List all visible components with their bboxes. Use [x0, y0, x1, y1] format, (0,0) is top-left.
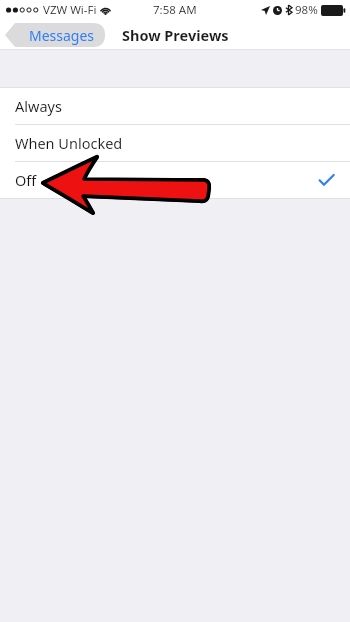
staticText: Off	[15, 170, 37, 190]
staticText: 98%	[295, 2, 318, 18]
staticText: 7:58 AM	[153, 2, 197, 18]
staticText: VZW Wi-Fi	[43, 2, 97, 18]
button[interactable]: When Unlocked	[0, 125, 350, 161]
staticText: Show Previews	[122, 25, 229, 45]
staticText: When Unlocked	[15, 133, 123, 153]
staticText: Messages	[29, 26, 95, 45]
button[interactable]: Off	[0, 162, 350, 198]
button[interactable]: Back to Messages	[5, 23, 105, 47]
button[interactable]: Always	[0, 88, 350, 124]
staticText: Always	[15, 96, 62, 116]
